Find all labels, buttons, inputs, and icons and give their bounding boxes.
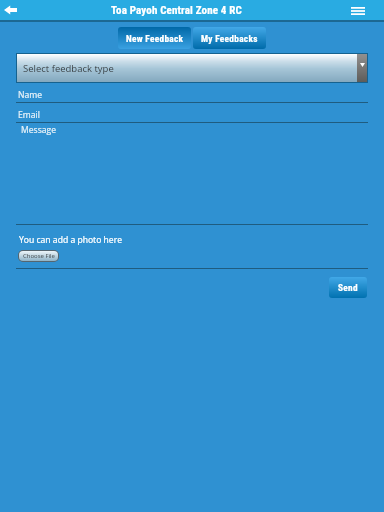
button[interactable]: Menu [348, 0, 368, 20]
staticText: New Feedback [126, 33, 184, 44]
button[interactable]: Choose File [19, 251, 58, 261]
staticText: My Feedbacks [201, 33, 258, 44]
staticText: Toa Payoh Central Zone 4 RC [111, 4, 242, 17]
staticText: Choose File [23, 252, 55, 260]
button[interactable]: New Feedback [118, 27, 191, 49]
button[interactable]: Send [329, 277, 367, 298]
staticText: Select feedback type [23, 62, 114, 75]
button[interactable]: Select feedback type [17, 54, 367, 82]
button[interactable]: My Feedbacks [193, 27, 266, 49]
staticText: Message [21, 124, 57, 136]
staticText: You can add a photo here [19, 234, 122, 246]
staticText: Email [18, 109, 40, 121]
button[interactable]: Back [0, 0, 20, 20]
staticText: Name [18, 89, 43, 101]
staticText: Send [338, 282, 358, 293]
